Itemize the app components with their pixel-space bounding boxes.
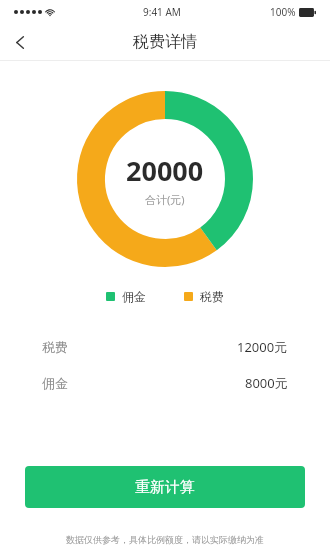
staticText: 重新计算 <box>135 478 195 497</box>
button[interactable]: Back <box>0 24 40 60</box>
staticText: 佣金 <box>122 289 146 304</box>
staticText: 12000元 <box>237 338 288 356</box>
button[interactable]: 重新计算 <box>25 466 305 508</box>
staticText: 税费详情 <box>133 32 197 52</box>
button[interactable]: 佣金 <box>106 289 146 304</box>
staticText: 9:41 AM <box>143 5 181 19</box>
staticText: 100% <box>270 5 296 19</box>
button[interactable]: 税费 <box>184 289 224 304</box>
staticText: 税费 <box>42 339 68 355</box>
staticText: 税费 <box>200 289 224 304</box>
button[interactable]: 佣金 <box>0 374 330 392</box>
staticText: 佣金 <box>42 375 68 391</box>
staticText: 数据仅供参考，具体比例额度，请以实际缴纳为准 <box>66 534 264 545</box>
staticText: 8000元 <box>245 374 288 392</box>
staticText: 合计(元) <box>145 192 185 207</box>
staticText: 20000 <box>126 152 204 189</box>
button[interactable]: 税费 <box>0 338 330 356</box>
